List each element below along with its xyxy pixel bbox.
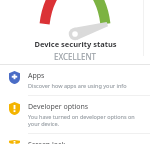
staticText: Apps [28,71,45,81]
button[interactable]: Apps [0,65,150,95]
button[interactable]: Screen lock [0,134,150,150]
staticText: EXCELLENT [54,51,96,62]
staticText: Device security status [34,39,117,49]
staticText: Developer options [28,102,89,112]
staticText: Discover how apps are using your info [28,82,127,89]
staticText: Screen lock [28,140,66,144]
staticText: You have turned on developer options on … [28,113,142,127]
other: Screen lock [9,140,20,144]
button[interactable]: Developer options [0,96,150,133]
other: Developer options [9,102,20,115]
other: Apps [9,71,20,84]
